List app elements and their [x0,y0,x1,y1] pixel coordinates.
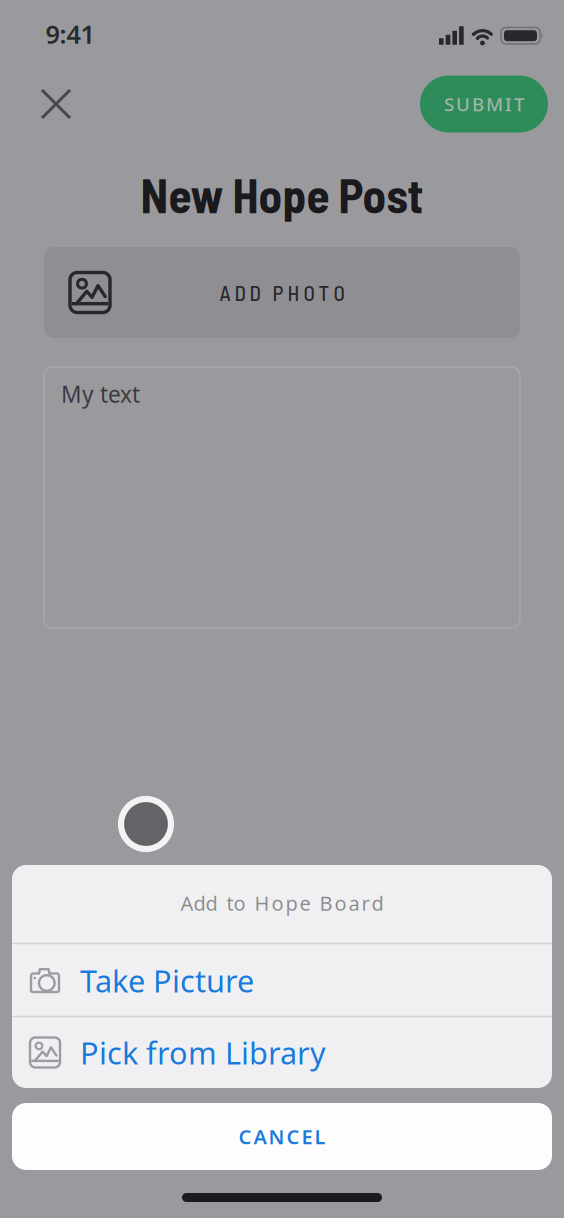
staticText: A D D P H O T O [219,280,344,305]
staticText: Take Picture [80,960,254,1001]
staticText: Pick from Library [80,1032,326,1073]
staticText: C A N C E L [238,1123,325,1150]
button[interactable]: A D D P H O T O [44,247,520,338]
button[interactable]: S U B M I T [420,75,548,132]
button[interactable]: C A N C E L [12,1103,552,1170]
button[interactable]: Take Picture [12,944,552,1017]
staticText: 9:41 [45,17,94,51]
staticText: New Hope Post [140,166,423,223]
button[interactable]: Close [34,82,78,126]
button[interactable]: Pick from Library [12,1016,552,1088]
staticText: S U B M I T [444,92,524,116]
button[interactable]: Board color [121,799,171,849]
staticText: My text [61,379,140,409]
staticText: Add to H o p e B o a r d [180,890,383,916]
